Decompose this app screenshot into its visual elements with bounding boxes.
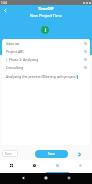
button[interactable]: Date <box>2 150 18 157</box>
staticText: Save <box>48 152 55 156</box>
button[interactable]: Back <box>0 5 11 16</box>
staticText: Project ABC <box>6 49 25 54</box>
button[interactable]: Send <box>74 149 85 160</box>
button[interactable]: Timer <box>46 160 69 173</box>
button[interactable]: Timer running <box>41 26 49 34</box>
button[interactable]: Consulting <box>6 63 87 71</box>
button[interactable]: Reports <box>69 160 92 173</box>
staticText: | Phase 3: Analysing <box>6 57 39 62</box>
button[interactable]: | Phase 3: Analysing <box>6 55 87 63</box>
button[interactable]: Recent <box>23 160 46 173</box>
button[interactable]: Project ABC <box>6 47 87 55</box>
button[interactable]: Apps <box>0 160 23 173</box>
staticText: TimeOff <box>38 6 54 11</box>
staticText: Analyzing the process (Meeting with proj… <box>6 74 77 79</box>
button[interactable]: labor ws <box>6 39 87 47</box>
staticText: Consulting <box>6 65 24 70</box>
staticText: New Project Time <box>30 13 62 18</box>
staticText: Date <box>5 152 12 156</box>
button[interactable]: Save <box>35 150 68 158</box>
staticText: 1:24 <box>1 1 7 5</box>
staticText: labor ws <box>6 41 20 46</box>
